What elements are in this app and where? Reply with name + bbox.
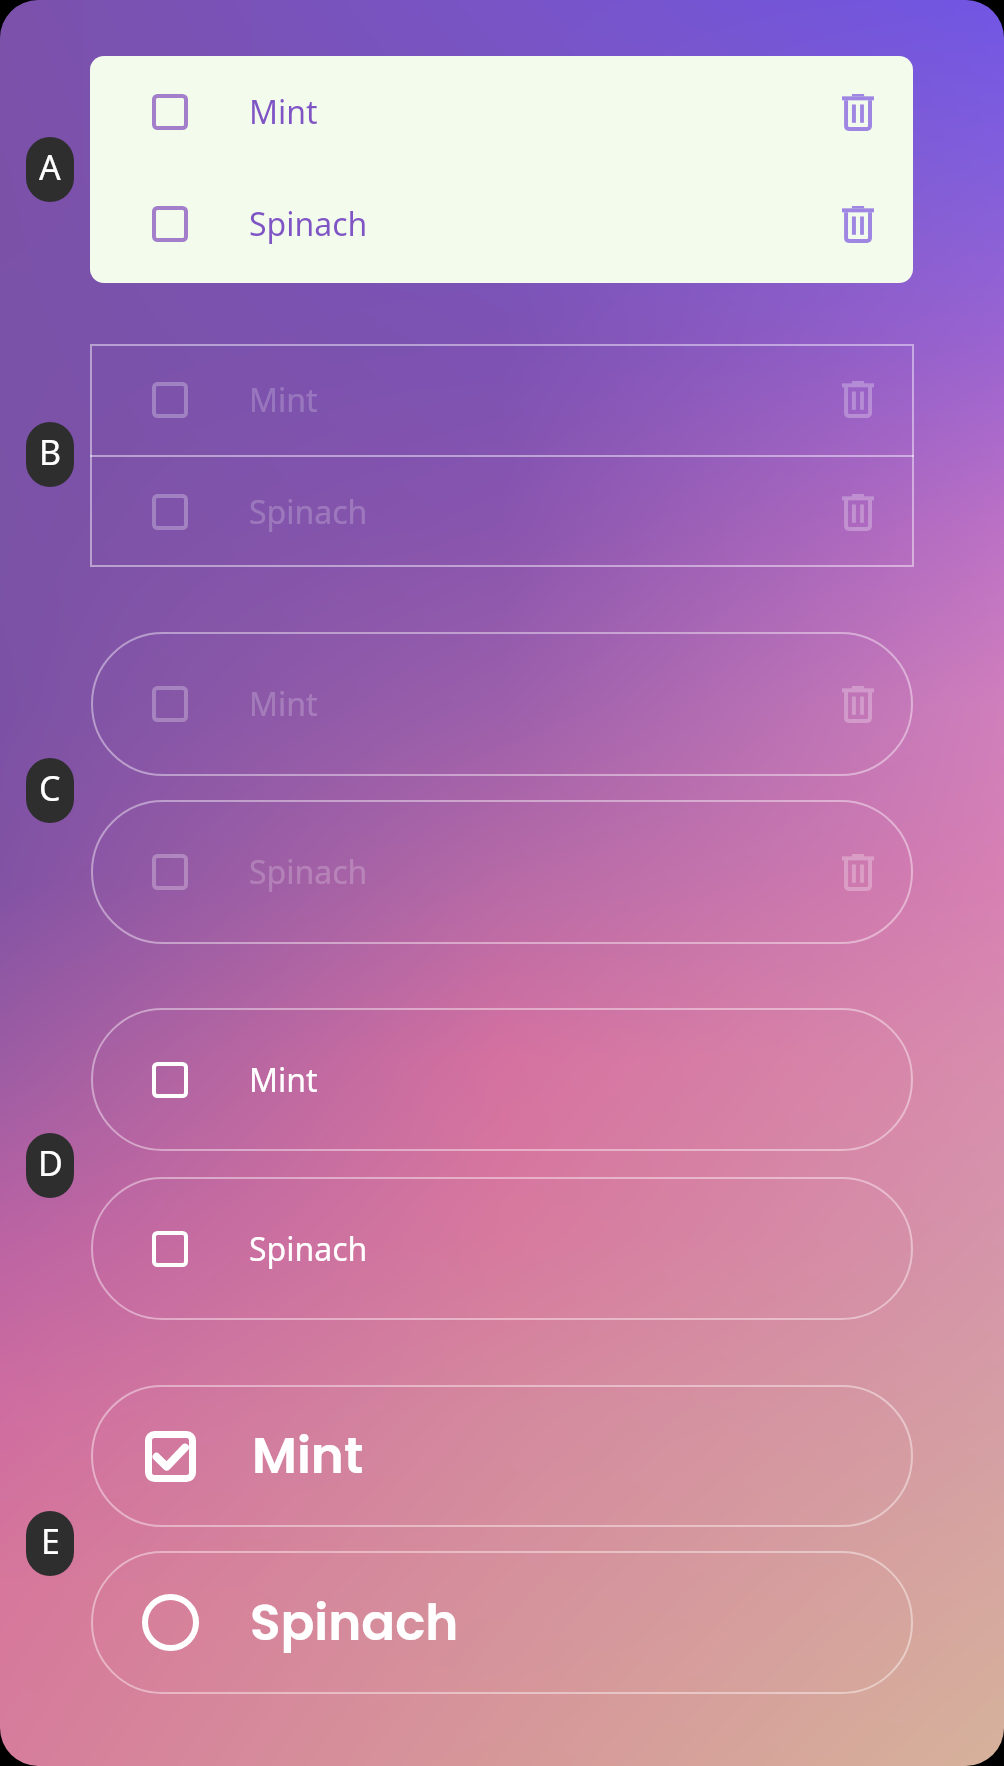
button[interactable]: Spinach (91, 800, 913, 944)
button[interactable]: Mint (91, 1385, 913, 1527)
button[interactable]: A (26, 137, 74, 202)
button[interactable]: Mint (91, 632, 913, 776)
staticText: Mint (252, 1421, 364, 1491)
staticText: Spinach (250, 1588, 459, 1658)
button[interactable]: D (26, 1133, 74, 1198)
button[interactable]: Delete Mint (835, 344, 881, 455)
staticText: Spinach (249, 850, 368, 894)
button[interactable]: E (26, 1511, 74, 1576)
button[interactable]: Spinach (90, 168, 913, 280)
staticText: Spinach (249, 1227, 368, 1271)
staticText: B (39, 429, 62, 475)
button[interactable]: Spinach (90, 457, 914, 567)
button[interactable]: Delete Mint (835, 56, 881, 168)
staticText: Mint (249, 90, 318, 134)
button[interactable]: Delete Spinach (835, 457, 881, 567)
button[interactable]: C (26, 758, 74, 823)
staticText: Spinach (249, 202, 368, 246)
button[interactable]: Spinach (91, 1551, 913, 1694)
button[interactable]: Delete Spinach (835, 800, 881, 944)
button[interactable]: Mint (91, 1008, 913, 1151)
button[interactable]: B (26, 422, 74, 487)
staticText: Mint (249, 682, 318, 726)
staticText: Mint (249, 378, 318, 422)
staticText: C (39, 765, 61, 811)
button[interactable]: Spinach (91, 1177, 913, 1320)
staticText: D (38, 1140, 63, 1186)
staticText: Spinach (249, 490, 368, 534)
button[interactable]: Mint (90, 344, 914, 455)
staticText: A (39, 144, 61, 190)
button[interactable]: Delete Mint (835, 632, 881, 776)
button[interactable]: Delete Spinach (835, 168, 881, 280)
staticText: E (41, 1518, 60, 1564)
staticText: Mint (249, 1058, 318, 1102)
button[interactable]: Mint (90, 56, 913, 168)
